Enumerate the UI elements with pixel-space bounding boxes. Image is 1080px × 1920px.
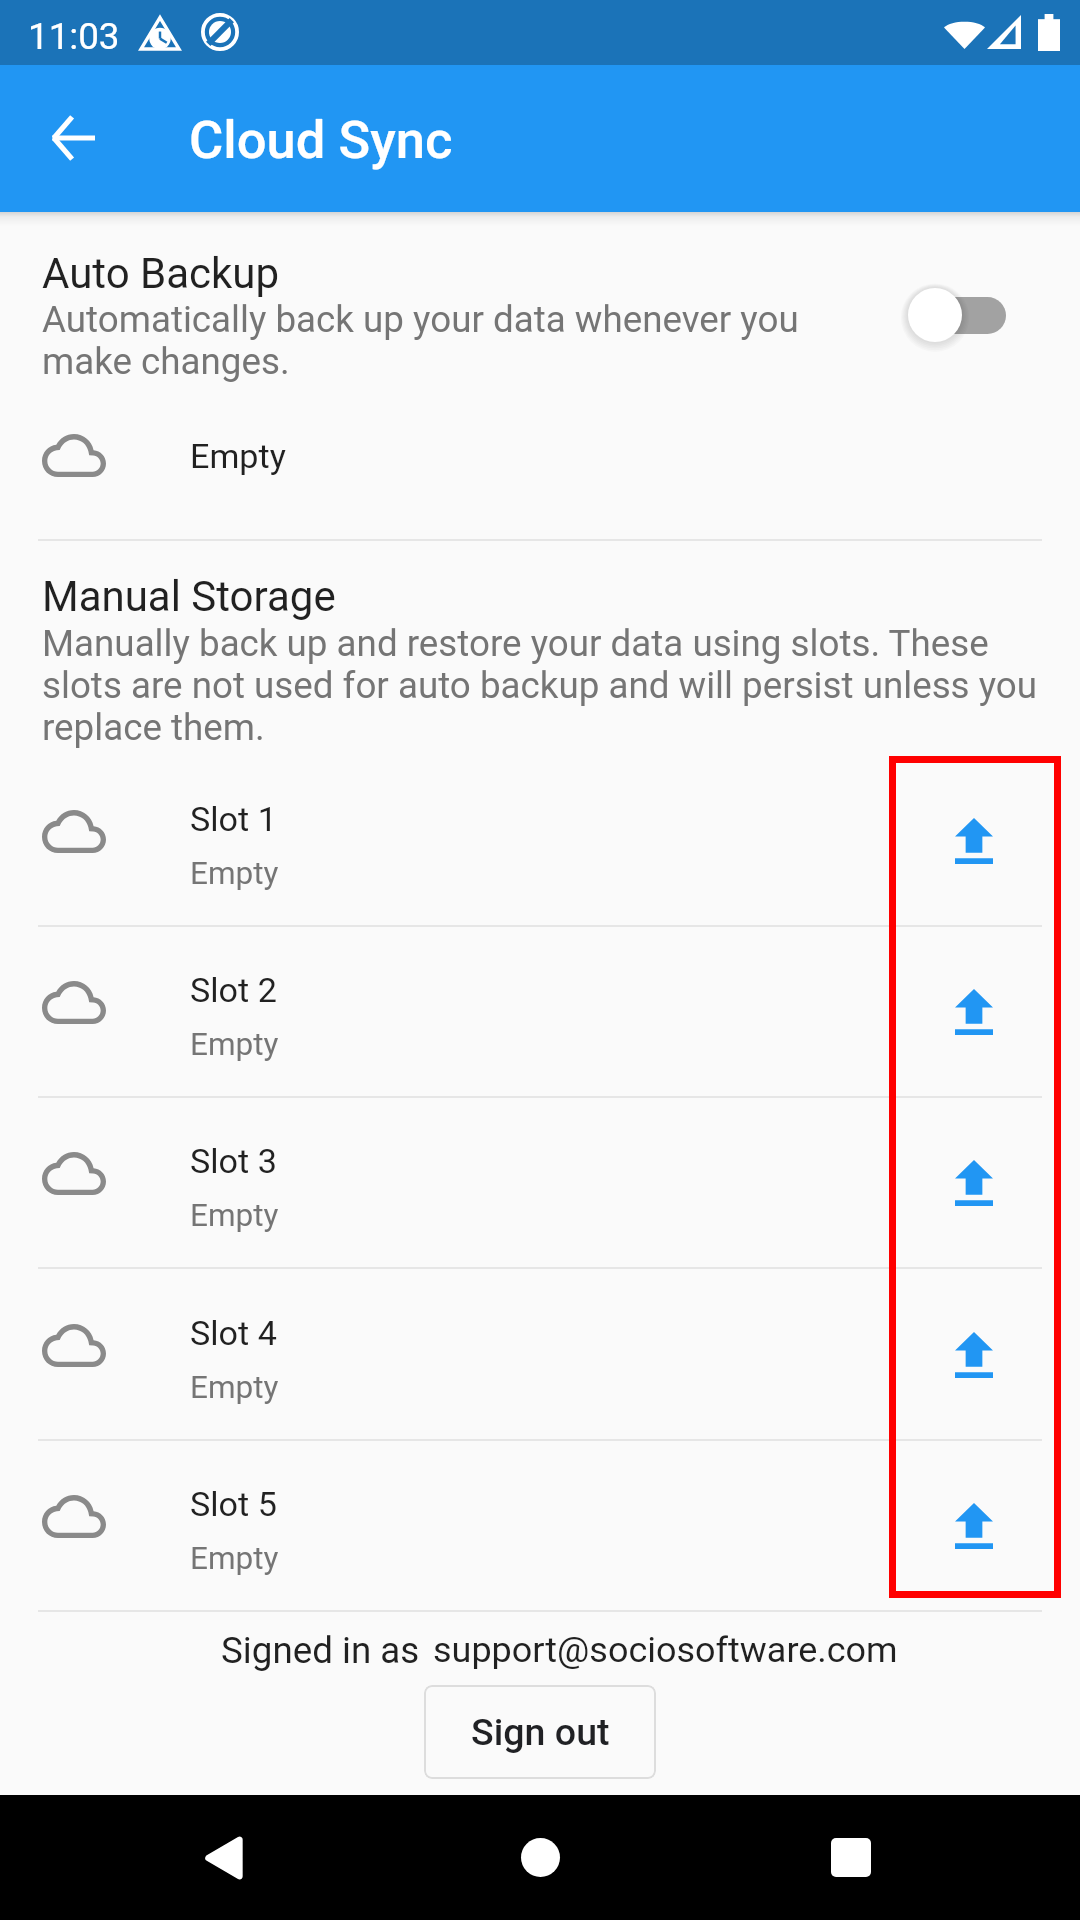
button[interactable]: Slot 2: [0, 927, 1080, 1097]
staticText: Empty: [190, 855, 279, 892]
staticText: Slot 4: [190, 1313, 277, 1353]
button[interactable]: Upload to slot 5: [890, 1441, 1057, 1611]
button[interactable]: Auto Backup toggle: [894, 259, 1020, 371]
staticText: Slot 3: [190, 1141, 277, 1181]
button[interactable]: Upload to slot 2: [890, 927, 1057, 1097]
staticText: Slot 1: [190, 799, 277, 839]
staticText: 11:03: [28, 15, 120, 58]
staticText: Empty: [190, 1197, 279, 1234]
button[interactable]: Slot 5: [0, 1441, 1080, 1611]
staticText: Signed in as: [221, 1629, 420, 1672]
button[interactable]: Home: [460, 1795, 620, 1920]
staticText: support@sociosoftware.com: [433, 1629, 898, 1671]
staticText: Empty: [190, 1026, 279, 1063]
staticText: Automatically back up your data whenever…: [42, 298, 842, 383]
button[interactable]: Recent apps: [771, 1795, 931, 1920]
staticText: Manually back up and restore your data u…: [42, 622, 1038, 749]
button[interactable]: Upload to slot 4: [890, 1270, 1057, 1440]
staticText: Auto Backup: [42, 249, 280, 298]
button[interactable]: Sign out: [424, 1685, 656, 1779]
staticText: Empty: [190, 1540, 279, 1577]
button[interactable]: Navigate up: [10, 75, 136, 201]
staticText: Sign out: [471, 1710, 610, 1754]
button[interactable]: Slot 1: [0, 756, 1080, 926]
staticText: Slot 2: [190, 970, 277, 1010]
staticText: Slot 5: [190, 1484, 277, 1524]
staticText: Manual Storage: [42, 572, 336, 621]
button[interactable]: Empty: [0, 405, 1080, 510]
staticText: Empty: [190, 436, 286, 476]
button[interactable]: Slot 4: [0, 1270, 1080, 1440]
button[interactable]: Upload to slot 1: [890, 756, 1057, 926]
button[interactable]: Upload to slot 3: [890, 1098, 1057, 1268]
button[interactable]: Slot 3: [0, 1098, 1080, 1268]
staticText: Cloud Sync: [189, 109, 453, 171]
staticText: Empty: [190, 1369, 279, 1406]
button[interactable]: Auto Backup: [0, 225, 880, 395]
button[interactable]: Back: [145, 1795, 305, 1920]
